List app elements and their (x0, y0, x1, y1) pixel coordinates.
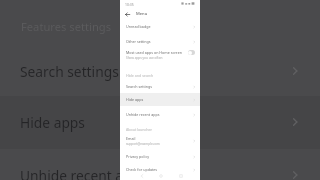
staticText: Menu (136, 11, 148, 17)
staticText: Privacy policy (126, 154, 150, 159)
button[interactable]: Unhide recent apps (120, 108, 200, 121)
staticText: Features settings (21, 19, 112, 34)
staticText: Show apps you use often (126, 56, 163, 60)
staticText: 10:35 (125, 2, 134, 7)
staticText: Search settings (126, 84, 153, 89)
staticText: Most used apps on Home screen (126, 50, 182, 55)
staticText: support@example.com (126, 142, 160, 146)
button[interactable]: Email (120, 133, 200, 149)
button[interactable]: Back (122, 9, 132, 19)
button[interactable]: Back (137, 171, 146, 180)
staticText: Search settings (20, 62, 119, 81)
staticText: Email (126, 136, 136, 141)
staticText: Unread badge (126, 24, 151, 29)
staticText: Other settings (126, 39, 151, 44)
staticText: Check for updates (126, 167, 158, 172)
button[interactable]: Other settings (120, 35, 200, 48)
staticText: Hide apps (126, 97, 144, 102)
staticText: About launcher (126, 127, 152, 132)
staticText: Hide and search (126, 73, 154, 78)
button[interactable]: Privacy policy (120, 150, 200, 163)
button[interactable]: Most used apps on Home screen (120, 47, 200, 63)
button[interactable]: Hide apps (0, 106, 320, 138)
button[interactable]: Recent apps (176, 171, 185, 180)
button[interactable]: Search settings (120, 80, 200, 93)
button[interactable]: Check for updates (120, 163, 200, 176)
button[interactable]: Home (156, 171, 165, 180)
button[interactable]: Unread badge (120, 20, 200, 33)
staticText: Hide apps (20, 113, 85, 132)
button[interactable]: Unhide recent apps (0, 159, 320, 180)
button[interactable]: Hide apps (120, 93, 200, 106)
button[interactable]: Features settings (0, 15, 320, 37)
staticText: Unhide recent apps (126, 112, 160, 117)
button[interactable]: Toggle most used apps (188, 50, 195, 55)
staticText: Unhide recent apps (20, 166, 147, 180)
button[interactable]: Search settings (0, 55, 320, 87)
